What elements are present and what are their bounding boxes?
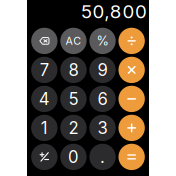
staticText: 1 bbox=[41, 118, 48, 138]
button[interactable]: 4 bbox=[31, 86, 58, 112]
button[interactable]: 5 bbox=[60, 86, 87, 112]
button[interactable]: Delete bbox=[31, 28, 58, 54]
staticText: 0 bbox=[68, 147, 79, 167]
button[interactable]: Divide bbox=[118, 28, 145, 54]
button[interactable]: 7 bbox=[31, 57, 58, 83]
button[interactable]: 3 bbox=[89, 115, 116, 141]
button[interactable]: Percent bbox=[89, 28, 116, 54]
button[interactable]: 2 bbox=[60, 115, 87, 141]
staticText: AC bbox=[66, 34, 81, 47]
staticText: 3 bbox=[97, 118, 107, 138]
button[interactable]: 9 bbox=[89, 57, 116, 83]
button[interactable]: Add bbox=[118, 115, 145, 141]
button[interactable]: Equals bbox=[118, 144, 145, 170]
button[interactable]: 0 bbox=[60, 144, 87, 170]
staticText: 5 bbox=[68, 89, 78, 109]
staticText: 50,800 bbox=[81, 0, 147, 23]
button[interactable]: 8 bbox=[60, 57, 87, 83]
staticText: 7 bbox=[40, 60, 49, 80]
staticText: % bbox=[96, 33, 108, 48]
staticText: 9 bbox=[97, 60, 107, 80]
button[interactable]: Plus minus bbox=[31, 144, 58, 170]
button[interactable]: 1 bbox=[31, 115, 58, 141]
staticText: 8 bbox=[68, 60, 78, 80]
button[interactable]: 6 bbox=[89, 86, 116, 112]
button[interactable]: Multiply bbox=[118, 57, 145, 83]
staticText: . bbox=[100, 147, 105, 167]
staticText: 2 bbox=[68, 118, 78, 138]
button[interactable]: Clear bbox=[60, 28, 87, 54]
button[interactable]: Decimal point bbox=[89, 144, 116, 170]
button[interactable]: Subtract bbox=[118, 86, 145, 112]
staticText: 6 bbox=[97, 89, 107, 109]
staticText: 4 bbox=[39, 89, 50, 109]
